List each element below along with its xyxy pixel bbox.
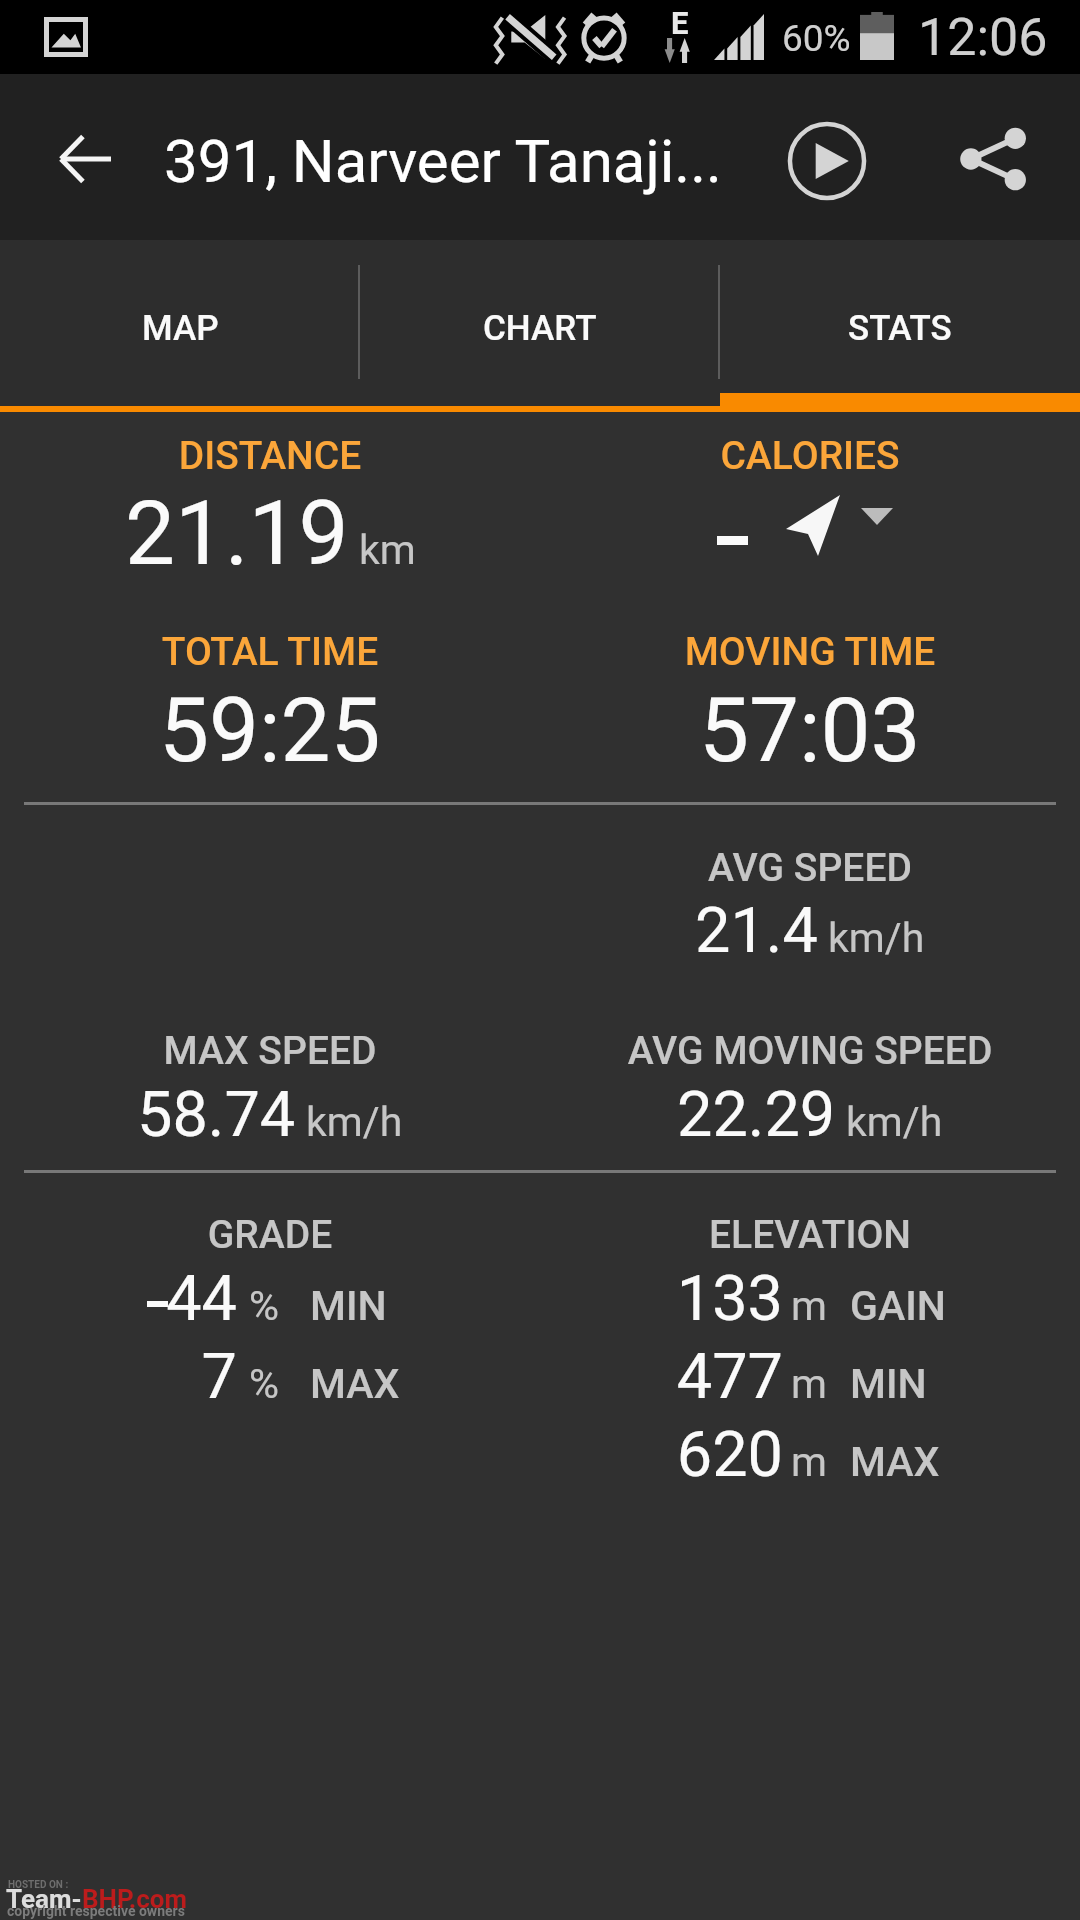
staticText: ELEVATION	[510, 1212, 1080, 1258]
button[interactable]: Back	[30, 104, 140, 214]
staticText: copyright respective owners	[7, 1903, 185, 1919]
staticText: km/h	[306, 1098, 403, 1146]
staticText: MIN	[310, 1282, 387, 1330]
staticText: m	[791, 1438, 827, 1486]
staticText: 44	[0, 1262, 237, 1336]
staticText: GAIN	[850, 1282, 946, 1330]
staticText: m	[791, 1360, 827, 1408]
staticText: GRADE	[0, 1212, 570, 1258]
staticText: AVG MOVING SPEED	[510, 1028, 1080, 1074]
staticText: 22.29	[677, 1078, 836, 1152]
button[interactable]: CHART	[360, 240, 720, 406]
staticText: CHART	[483, 308, 597, 349]
staticText: Team-	[6, 1884, 82, 1914]
staticText: BHP.com	[82, 1884, 187, 1914]
staticText: km	[359, 526, 416, 574]
staticText: 477	[523, 1340, 783, 1414]
button[interactable]: Share	[940, 104, 1050, 214]
staticText: MAX	[850, 1438, 940, 1486]
staticText: %	[249, 1360, 280, 1408]
staticText: km/h	[846, 1098, 943, 1146]
staticText: CALORIES	[510, 433, 1080, 479]
staticText: MAP	[142, 308, 219, 349]
staticText: STATS	[848, 308, 952, 349]
staticText: m	[791, 1282, 827, 1330]
staticText: HOSTED ON :	[8, 1879, 69, 1891]
button[interactable]: STATS	[720, 240, 1080, 406]
staticText: TOTAL TIME	[0, 629, 570, 675]
staticText: km/h	[828, 914, 925, 962]
button[interactable]: MAP	[0, 240, 360, 406]
staticText: MAX SPEED	[0, 1028, 570, 1074]
staticText: 133	[523, 1262, 783, 1336]
staticText: MAX	[310, 1360, 400, 1408]
staticText: DISTANCE	[0, 433, 570, 479]
staticText: 620	[523, 1418, 783, 1492]
staticText: 60%	[782, 17, 851, 60]
staticText: E	[671, 5, 689, 41]
staticText: 391, Narveer Tanaji...	[164, 126, 722, 196]
staticText: 59:25	[159, 678, 381, 782]
staticText: %	[249, 1282, 280, 1330]
staticText: MOVING TIME	[510, 629, 1080, 675]
staticText: 7	[0, 1340, 237, 1414]
staticText: 58.74	[137, 1078, 296, 1152]
staticText: AVG SPEED	[510, 845, 1080, 891]
staticText: 21.19	[125, 481, 349, 585]
staticText: 57:03	[699, 678, 921, 782]
staticText: 12:06	[918, 7, 1048, 68]
button[interactable]: Play	[772, 106, 882, 216]
staticText: MIN	[850, 1360, 927, 1408]
staticText: 21.4	[695, 894, 818, 968]
